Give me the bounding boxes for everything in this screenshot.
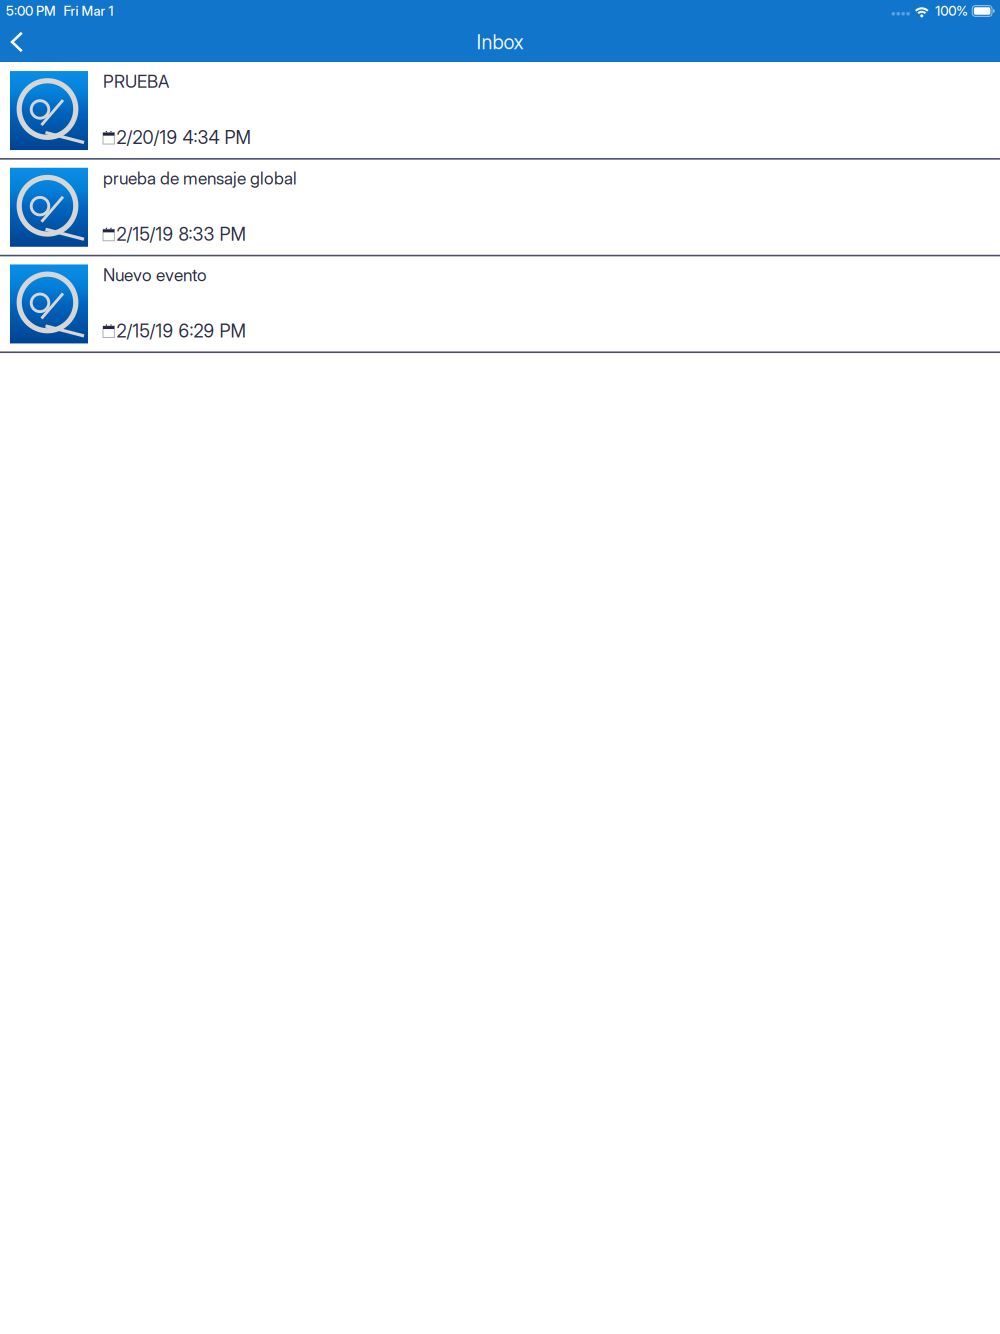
staticText: Fri Mar 1 bbox=[63, 3, 113, 19]
button[interactable]: prueba de mensaje global bbox=[0, 159, 1000, 255]
staticText: 2/20/19 4:34 PM bbox=[117, 127, 251, 148]
button[interactable]: Back bbox=[0, 22, 34, 62]
staticText: Nuevo evento bbox=[103, 264, 207, 285]
staticText: 100% bbox=[935, 3, 968, 19]
button[interactable]: Nuevo evento bbox=[0, 255, 1000, 352]
staticText: 2/15/19 8:33 PM bbox=[117, 223, 246, 245]
staticText: 5:00 PM bbox=[6, 3, 56, 19]
staticText: 2/15/19 6:29 PM bbox=[117, 320, 246, 342]
staticText: prueba de mensaje global bbox=[103, 168, 297, 189]
staticText: Inbox bbox=[476, 30, 523, 54]
button[interactable]: PRUEBA bbox=[0, 62, 1000, 159]
staticText: PRUEBA bbox=[103, 71, 169, 92]
